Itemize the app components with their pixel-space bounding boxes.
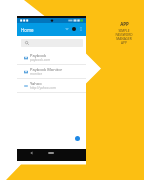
button[interactable]: Yahoo [17, 79, 86, 92]
button[interactable]: Add [75, 136, 80, 141]
button[interactable]: Filter [63, 25, 71, 33]
button[interactable]: More options [77, 25, 84, 32]
staticText: APP [120, 21, 129, 27]
staticText: Paybook Monitor [30, 67, 63, 72]
staticText: paybook.com [30, 58, 51, 62]
button[interactable]: Paybook Monitor [17, 65, 86, 78]
staticText: Yahoo [30, 81, 42, 86]
button[interactable]: Search [21, 39, 83, 47]
button[interactable]: Account [70, 25, 78, 33]
staticText: Paybook [30, 53, 47, 58]
staticText: monitor [30, 72, 43, 76]
staticText: Home [21, 27, 34, 33]
staticText: http://yahoo.com [30, 86, 56, 90]
button[interactable]: Paybook [17, 51, 86, 64]
staticText: SIMPLE PASSWORD MANAGER APP [115, 29, 133, 45]
